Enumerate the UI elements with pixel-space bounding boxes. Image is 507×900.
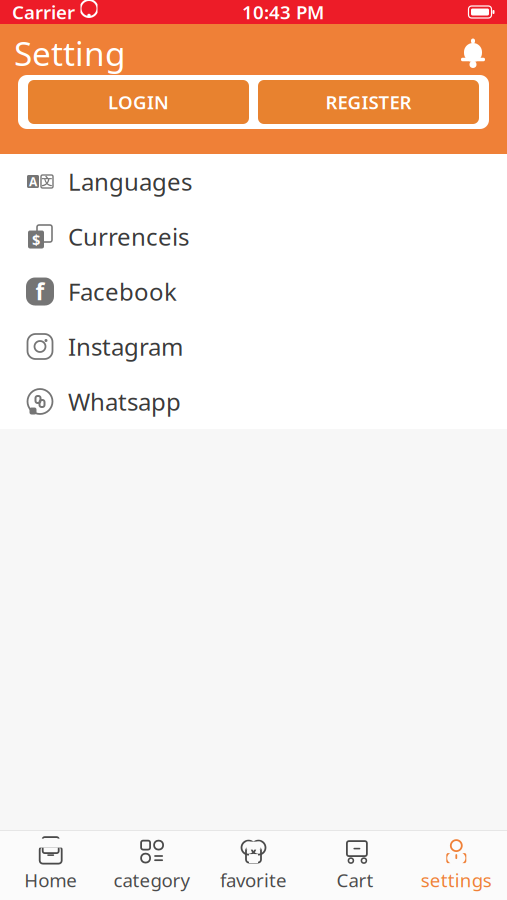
- button[interactable]: LOGIN: [28, 80, 249, 124]
- button[interactable]: f: [0, 264, 507, 319]
- button[interactable]: Notifications: [451, 31, 495, 75]
- button[interactable]: Instagram: [0, 319, 507, 374]
- button[interactable]: category: [101, 830, 203, 900]
- staticText: Languages: [68, 166, 192, 197]
- staticText: Carrier: [12, 0, 75, 24]
- staticText: 文: [41, 175, 52, 188]
- button[interactable]: Home: [0, 830, 101, 900]
- staticText: LOGIN: [108, 90, 169, 114]
- staticText: favorite: [220, 868, 287, 892]
- button[interactable]: REGISTER: [258, 80, 479, 124]
- staticText: Setting: [14, 31, 126, 75]
- staticText: settings: [421, 868, 492, 892]
- button[interactable]: favorite: [203, 830, 304, 900]
- staticText: Instagram: [68, 331, 183, 362]
- staticText: $: [32, 230, 40, 249]
- button[interactable]: Whatsapp: [0, 374, 507, 429]
- staticText: Home: [24, 868, 77, 892]
- staticText: category: [114, 868, 191, 892]
- staticText: Facebook: [68, 276, 177, 307]
- button[interactable]: settings: [406, 830, 507, 900]
- staticText: Cart: [336, 868, 373, 892]
- button[interactable]: $: [0, 209, 507, 264]
- staticText: Whatsapp: [68, 386, 181, 417]
- staticText: A: [29, 173, 37, 189]
- staticText: Currenceis: [68, 221, 189, 252]
- staticText: f: [35, 276, 44, 306]
- button[interactable]: A: [0, 154, 507, 209]
- staticText: REGISTER: [325, 90, 411, 114]
- staticText: 10:43 PM: [242, 0, 324, 24]
- button[interactable]: Cart: [304, 830, 406, 900]
